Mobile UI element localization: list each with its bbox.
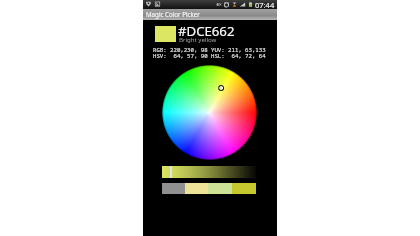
staticText: Bright yellow (179, 35, 217, 43)
staticText: HSL: 64, 72, 64 (211, 52, 266, 60)
staticText: 07:44 (255, 0, 275, 9)
button[interactable]: Value slider (162, 166, 256, 178)
staticText: YUV: 211, 63,133 (211, 46, 266, 54)
staticText: HSV: 64, 57, 90 (153, 52, 208, 60)
staticText: RGB: 220,230, 98 (153, 46, 208, 54)
staticText: Magic Color Picker (146, 10, 200, 18)
button[interactable]: Magic Color Picker (143, 9, 277, 20)
button[interactable]: Colour wheel (162, 65, 257, 160)
staticText: #DCE662 (178, 22, 235, 40)
